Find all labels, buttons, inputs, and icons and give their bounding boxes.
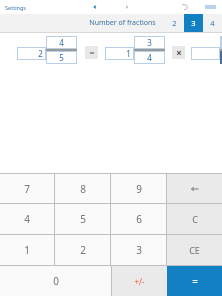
button[interactable]: 1 xyxy=(105,47,134,60)
staticText: +/- xyxy=(134,276,145,287)
staticText: 0 xyxy=(53,274,59,288)
staticText: 7 xyxy=(24,182,30,196)
button[interactable] xyxy=(191,47,220,60)
button[interactable]: 4 xyxy=(203,14,222,32)
button[interactable]: 4 xyxy=(46,36,77,49)
staticText: 8 xyxy=(80,182,86,196)
button[interactable]: Undo xyxy=(178,0,192,14)
staticText: C xyxy=(192,213,198,225)
button[interactable]: Multiply xyxy=(172,46,185,59)
button[interactable]: 5 xyxy=(55,204,110,234)
button[interactable]: 2 xyxy=(55,235,110,265)
button[interactable]: 8 xyxy=(55,174,110,203)
staticText: 3 xyxy=(147,37,152,48)
staticText: = xyxy=(192,274,198,288)
staticText: 4 xyxy=(147,52,152,63)
button[interactable]: +/- xyxy=(112,266,167,296)
staticText: 5 xyxy=(59,52,64,63)
button[interactable]: Backspace xyxy=(167,174,222,203)
staticText: 5 xyxy=(80,212,86,226)
staticText: 1 xyxy=(126,48,131,59)
button[interactable]: = xyxy=(167,266,222,296)
button[interactable]: 2 xyxy=(17,47,46,60)
staticText: 6 xyxy=(136,212,142,226)
button[interactable]: 2 xyxy=(165,14,184,32)
staticText: 4 xyxy=(210,18,215,28)
button[interactable]: 1 xyxy=(0,235,54,265)
button[interactable]: 3 xyxy=(111,235,166,265)
staticText: 2 xyxy=(80,243,86,257)
staticText: 2 xyxy=(38,48,43,59)
staticText: 4 xyxy=(24,212,30,226)
button[interactable]: Minus xyxy=(85,46,98,59)
button[interactable]: 9 xyxy=(111,174,166,203)
button[interactable]: Menu xyxy=(202,0,218,14)
staticText: 3 xyxy=(191,18,196,28)
button[interactable]: 3 xyxy=(184,14,203,32)
staticText: 9 xyxy=(136,182,142,196)
button[interactable]: 7 xyxy=(0,174,54,203)
staticText: Number of fractions xyxy=(89,18,156,28)
staticText: CE xyxy=(189,244,200,256)
staticText: 1 xyxy=(24,243,30,257)
button[interactable]: Next xyxy=(120,0,134,14)
button[interactable]: CE xyxy=(167,235,222,265)
button[interactable]: Previous xyxy=(88,0,102,14)
button[interactable]: C xyxy=(167,204,222,234)
button[interactable]: Settings xyxy=(0,3,29,12)
button[interactable]: 5 xyxy=(46,51,77,64)
button[interactable]: 0 xyxy=(0,266,111,296)
staticText: 2 xyxy=(172,18,177,28)
button[interactable]: 3 xyxy=(134,36,165,49)
button[interactable]: 6 xyxy=(111,204,166,234)
staticText: 4 xyxy=(59,37,64,48)
staticText: 3 xyxy=(136,243,142,257)
button[interactable]: 4 xyxy=(134,51,165,64)
button[interactable]: 4 xyxy=(0,204,54,234)
